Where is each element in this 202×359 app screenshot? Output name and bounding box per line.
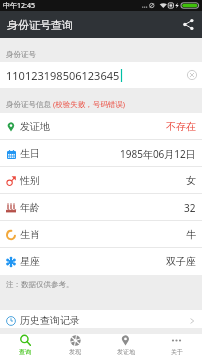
button[interactable]: 生日 bbox=[0, 140, 202, 167]
button[interactable]: 发证地 bbox=[0, 113, 202, 140]
staticText: 发现 bbox=[69, 348, 81, 356]
button[interactable]: 年龄 bbox=[0, 194, 202, 221]
button[interactable]: 性别 bbox=[0, 167, 202, 194]
button[interactable]: Clear text bbox=[184, 67, 200, 83]
staticText: 生肖 bbox=[20, 228, 40, 241]
staticText: 年龄 bbox=[20, 201, 40, 214]
staticText: (校验失败，号码错误) bbox=[53, 99, 125, 109]
button[interactable]: 历史查询记录 bbox=[0, 310, 202, 328]
staticText: 注：数据仅供参考。 bbox=[6, 280, 74, 289]
staticText: 性别 bbox=[20, 174, 40, 187]
staticText: 身份证号信息 bbox=[6, 99, 53, 109]
button[interactable]: Share bbox=[175, 11, 202, 38]
staticText: 1985年06月12日 bbox=[120, 147, 196, 161]
staticText: 发证地 bbox=[20, 120, 50, 133]
staticText: 历史查询记录 bbox=[20, 314, 80, 327]
staticText: 身份证号查询 bbox=[7, 18, 73, 32]
staticText: 女 bbox=[186, 174, 196, 187]
staticText: 身份证号 bbox=[6, 50, 36, 59]
staticText: 关于 bbox=[171, 348, 183, 356]
button[interactable]: 发证地 bbox=[100, 334, 151, 359]
staticText: 发证地 bbox=[117, 348, 135, 356]
staticText: 查询 bbox=[19, 348, 31, 356]
button[interactable]: 生肖 bbox=[0, 221, 202, 248]
staticText: 生日 bbox=[20, 147, 40, 160]
staticText: 不存在 bbox=[166, 120, 196, 133]
staticText: 110123198506123645 bbox=[6, 68, 120, 83]
staticText: 星座 bbox=[20, 255, 40, 268]
button[interactable]: 关于 bbox=[151, 334, 202, 359]
button[interactable]: 星座 bbox=[0, 248, 202, 275]
staticText: 中午12:45 bbox=[3, 1, 35, 11]
staticText: 牛 bbox=[186, 228, 196, 241]
button[interactable]: 发现 bbox=[50, 334, 100, 359]
staticText: 双子座 bbox=[166, 255, 196, 268]
button[interactable]: 查询 bbox=[0, 334, 50, 359]
staticText: 32 bbox=[184, 201, 196, 215]
